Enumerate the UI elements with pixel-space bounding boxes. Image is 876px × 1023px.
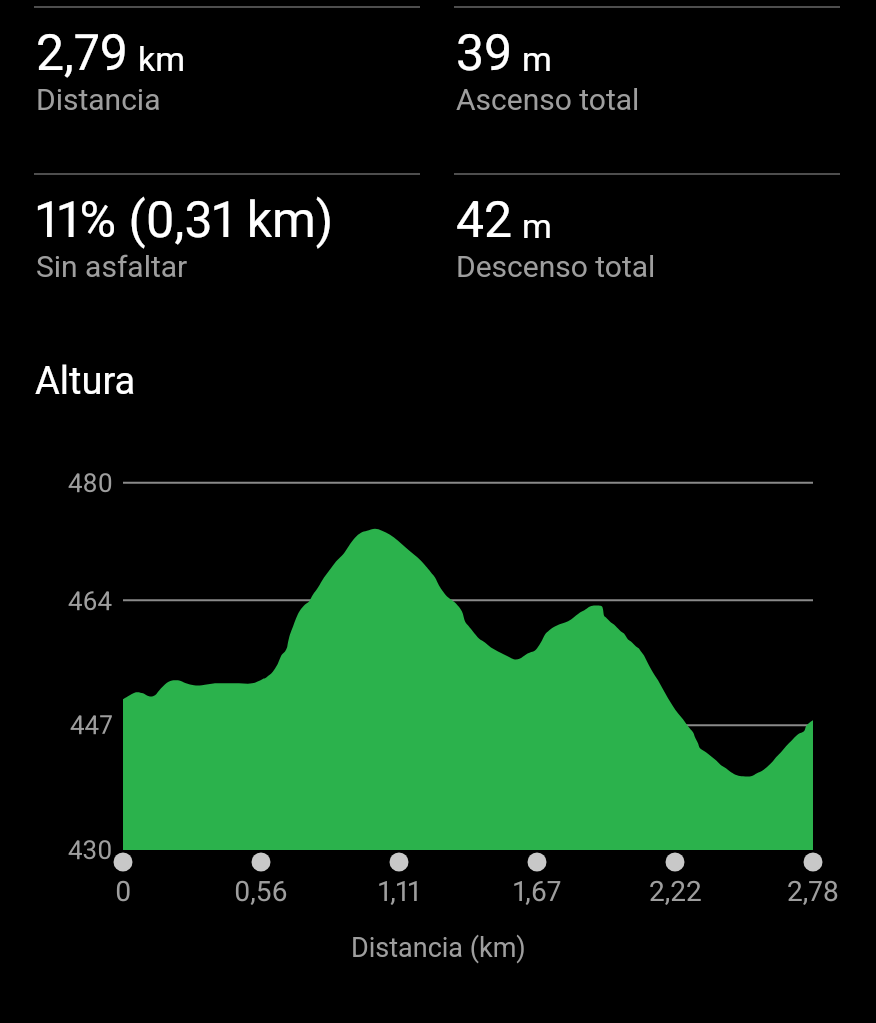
staticText: 480 bbox=[68, 468, 113, 498]
staticText: m bbox=[522, 39, 552, 79]
staticText: Distancia (km) bbox=[351, 932, 526, 964]
staticText: 447 bbox=[70, 710, 113, 740]
staticText: 2,78 bbox=[787, 875, 839, 908]
button[interactable]: 39 bbox=[454, 6, 840, 156]
staticText: Descenso total bbox=[456, 249, 656, 284]
staticText: Ascenso total bbox=[456, 82, 640, 117]
staticText: 464 bbox=[68, 586, 113, 616]
button[interactable]: 42 bbox=[454, 173, 840, 323]
staticText: 1,67 bbox=[513, 875, 562, 908]
staticText: km bbox=[138, 39, 186, 79]
staticText: Distancia bbox=[36, 82, 161, 117]
staticText: 42 bbox=[456, 191, 513, 250]
staticText: 430 bbox=[68, 835, 113, 865]
button[interactable]: 2,79 bbox=[34, 6, 420, 156]
staticText: Sin asfaltar bbox=[36, 249, 188, 284]
staticText: m bbox=[522, 206, 552, 246]
staticText: 0,56 bbox=[234, 875, 288, 908]
button[interactable]: 11% (0,31 km) bbox=[34, 173, 420, 323]
staticText: Altura bbox=[35, 359, 136, 404]
staticText: 39 bbox=[456, 24, 513, 83]
staticText: 0 bbox=[115, 875, 132, 908]
staticText: 2,22 bbox=[649, 875, 702, 908]
button[interactable]: Elevation chart bbox=[60, 455, 840, 875]
staticText: 1,11 bbox=[378, 875, 420, 908]
staticText: 2,79 bbox=[36, 24, 129, 83]
staticText: 11% (0,31 km) bbox=[36, 191, 334, 250]
